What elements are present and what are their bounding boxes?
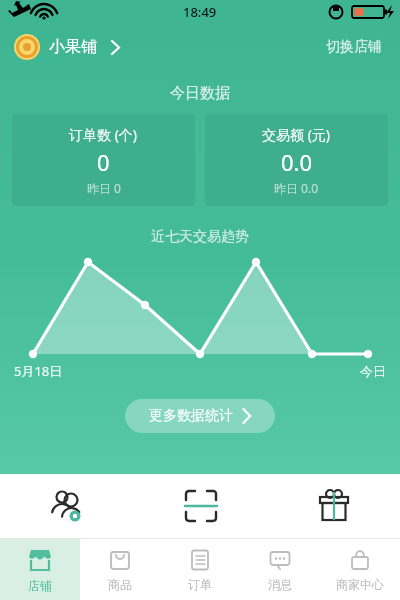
- staticText: 昨日 0.0: [274, 180, 319, 196]
- button[interactable]: 消息: [240, 539, 320, 600]
- staticText: 近七天交易趋势: [0, 228, 400, 246]
- button[interactable]: 订单: [160, 539, 240, 600]
- button[interactable]: 订单数 (个): [12, 114, 195, 206]
- button[interactable]: 店铺: [0, 539, 80, 600]
- button[interactable]: Scan: [134, 474, 267, 538]
- staticText: 交易额 (元): [262, 125, 331, 144]
- staticText: 0.0: [281, 147, 313, 177]
- staticText: 今日: [360, 363, 386, 379]
- button[interactable]: 交易额 (元): [205, 114, 388, 206]
- staticText: 昨日 0: [87, 180, 121, 196]
- staticText: 消息: [268, 577, 292, 592]
- staticText: 店铺: [28, 578, 52, 593]
- staticText: 今日数据: [0, 84, 400, 103]
- staticText: 商家中心: [336, 577, 384, 592]
- button[interactable]: Gift: [267, 474, 400, 538]
- staticText: 0: [97, 147, 110, 177]
- staticText: 18:49: [183, 3, 217, 21]
- button[interactable]: 更多数据统计: [125, 399, 275, 433]
- button[interactable]: 商品: [80, 539, 160, 600]
- staticText: 商品: [108, 577, 132, 592]
- staticText: 小果铺: [49, 37, 97, 57]
- staticText: 切换店铺: [326, 38, 382, 56]
- button[interactable]: 小果铺: [14, 34, 120, 60]
- staticText: 订单: [188, 577, 212, 592]
- button[interactable]: 商家中心: [320, 539, 400, 600]
- staticText: 订单数 (个): [69, 125, 138, 144]
- staticText: 更多数据统计: [149, 407, 233, 425]
- button[interactable]: 切换店铺: [322, 34, 386, 60]
- button[interactable]: Members: [0, 474, 134, 538]
- staticText: 5月18日: [14, 362, 63, 380]
